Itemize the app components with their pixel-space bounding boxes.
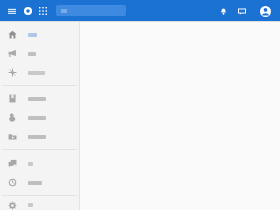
button[interactable]: Your videos — [0, 127, 79, 146]
button[interactable]: Menu — [6, 5, 18, 17]
button[interactable]: Messages — [235, 4, 249, 18]
button[interactable]: Liked videos — [0, 108, 79, 127]
button[interactable]: Home — [0, 25, 79, 44]
button[interactable]: Shorts — [0, 44, 79, 63]
button[interactable]: Account — [257, 3, 273, 19]
button[interactable]: Apps — [37, 5, 49, 17]
button[interactable]: Search — [56, 5, 126, 16]
button[interactable]: Notifications — [216, 4, 230, 18]
button[interactable]: Watch history — [0, 173, 79, 192]
button[interactable]: Home logo — [22, 5, 34, 17]
button[interactable]: Subscriptions — [0, 63, 79, 82]
button[interactable]: Settings — [0, 200, 79, 210]
button[interactable]: Library — [0, 89, 79, 108]
button[interactable]: Comments — [0, 154, 79, 173]
